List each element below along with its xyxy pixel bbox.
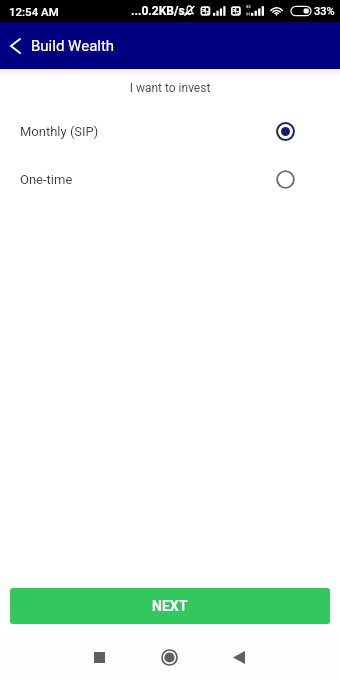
staticText: 12:54 AM [9,5,59,18]
staticText: Build Wealth [31,37,115,55]
button[interactable]: NEXT [10,588,330,624]
staticText: One-time [20,172,73,187]
staticText: ...0.2KB/s [131,4,185,18]
button[interactable]: One-time [0,155,340,203]
staticText: Monthly (SIP) [20,124,99,139]
button[interactable]: Back [217,635,261,679]
button[interactable]: Monthly (SIP) [0,107,340,155]
staticText: 33% [314,5,335,18]
staticText: NEXT [152,598,188,614]
staticText: I want to invest [0,81,340,95]
button[interactable]: Recent apps [77,635,121,679]
button[interactable]: Home [147,635,191,679]
button[interactable]: Back [0,22,31,69]
